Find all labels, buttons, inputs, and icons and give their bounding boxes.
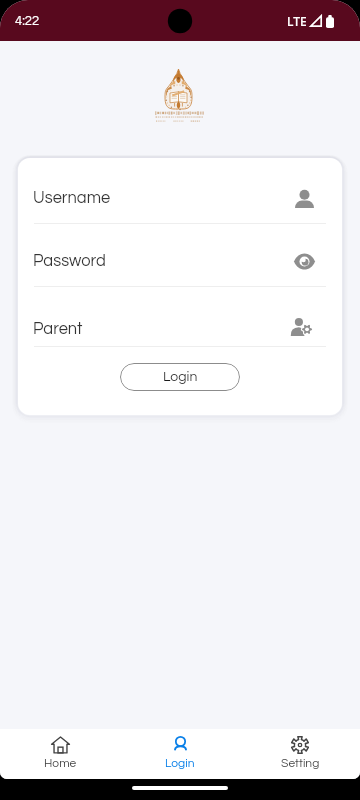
button[interactable]: Home <box>0 729 120 779</box>
staticText: Home <box>44 757 77 769</box>
button[interactable]: Login <box>120 363 240 391</box>
staticText: 4:22 <box>15 14 40 27</box>
staticText: Password <box>33 252 106 269</box>
staticText: Login <box>165 757 195 769</box>
button[interactable]: Parent <box>18 287 342 347</box>
button[interactable]: Setting <box>240 729 360 779</box>
button[interactable]: Username <box>18 158 342 224</box>
staticText: LTE <box>287 13 307 29</box>
button[interactable]: Username field <box>291 186 317 212</box>
button[interactable]: Parent account settings <box>287 314 313 340</box>
staticText: Setting <box>281 757 320 769</box>
button[interactable]: Show password <box>291 248 317 274</box>
button[interactable]: Login <box>120 729 240 779</box>
staticText: Username <box>33 189 111 206</box>
button[interactable]: Password <box>18 224 342 287</box>
staticText: Parent <box>33 320 83 337</box>
staticText: Login <box>163 370 198 384</box>
